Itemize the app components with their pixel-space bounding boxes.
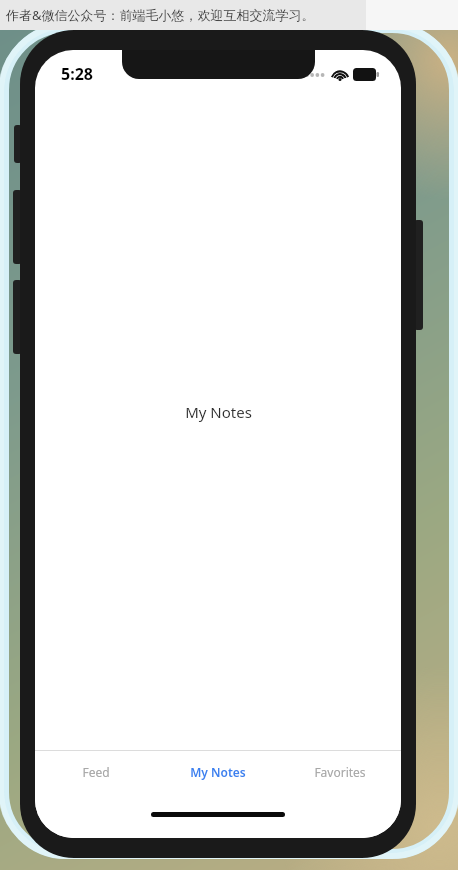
- staticText: Favorites: [314, 764, 366, 780]
- staticText: 作者&微信公众号：前端毛小悠，欢迎互相交流学习。: [6, 6, 315, 24]
- button[interactable]: My Notes: [157, 751, 279, 810]
- staticText: My Notes: [185, 402, 252, 422]
- staticText: My Notes: [190, 764, 246, 780]
- button[interactable]: Feed: [35, 751, 157, 810]
- staticText: 5:28: [61, 63, 93, 85]
- button[interactable]: Favorites: [279, 751, 401, 810]
- staticText: Feed: [82, 764, 110, 780]
